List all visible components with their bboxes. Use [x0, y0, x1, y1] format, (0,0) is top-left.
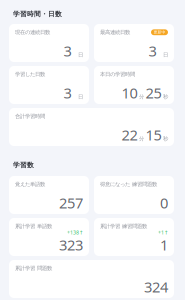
button[interactable]: 得意になった 練習問題数 — [94, 176, 174, 214]
staticText: 3 — [148, 41, 156, 60]
staticText: 得意になった 練習問題数 — [100, 181, 157, 188]
button[interactable]: 覚えた単語数 — [9, 176, 89, 214]
staticText: 324 — [144, 277, 168, 296]
staticText: 覚えた単語数 — [15, 181, 45, 188]
staticText: 1 — [160, 235, 168, 254]
staticText: 学習時間・日数 — [13, 10, 62, 18]
button[interactable]: 学習した日数 — [9, 66, 89, 104]
staticText: 22 — [121, 125, 137, 144]
staticText: 現在の連続日数 — [15, 29, 50, 36]
staticText: 累計学習 問題数 — [15, 265, 52, 272]
staticText: 日 — [78, 51, 83, 58]
staticText: 257 — [59, 193, 83, 212]
staticText: 10 — [121, 83, 137, 102]
button[interactable]: 本日の学習時間 — [94, 66, 174, 104]
staticText: 学習した日数 — [15, 71, 45, 78]
staticText: 合計学習時間 — [15, 113, 45, 120]
staticText: 本日の学習時間 — [100, 71, 135, 78]
staticText: 累計学習 単語数 — [15, 223, 52, 230]
staticText: 15 — [145, 125, 161, 144]
staticText: 25 — [145, 83, 161, 102]
button[interactable]: 累計学習 単語数 — [9, 218, 89, 256]
staticText: 秒 — [163, 93, 168, 100]
staticText: 3 — [63, 83, 71, 102]
button[interactable]: 現在の連続日数 — [9, 24, 89, 62]
staticText: 日 — [163, 51, 168, 58]
staticText: 分 — [139, 93, 144, 100]
staticText: 3 — [63, 41, 71, 60]
staticText: 日 — [78, 93, 83, 100]
staticText: +138↑ — [67, 229, 83, 236]
staticText: 更新中 — [153, 30, 165, 35]
button[interactable]: 累計学習 問題数 — [9, 260, 174, 298]
button[interactable]: 最高連続日数 — [94, 24, 174, 62]
button[interactable]: 合計学習時間 — [9, 108, 174, 146]
staticText: 累計学習 練習問題数 — [100, 223, 147, 230]
staticText: 秒 — [163, 135, 168, 142]
staticText: 最高連続日数 — [100, 29, 130, 36]
staticText: +1↑ — [158, 229, 168, 236]
button[interactable]: 累計学習 練習問題数 — [94, 218, 174, 256]
staticText: 分 — [139, 135, 144, 142]
staticText: 0 — [160, 193, 168, 212]
staticText: 323 — [59, 235, 83, 254]
staticText: 学習数 — [13, 161, 34, 169]
